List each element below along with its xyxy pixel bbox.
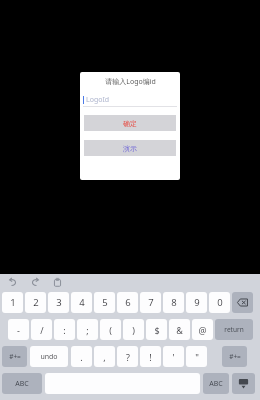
staticText: #+= <box>9 352 21 361</box>
button[interactable]: ( <box>100 319 121 340</box>
button[interactable]: ; <box>77 319 98 340</box>
button[interactable]: 9 <box>186 292 207 313</box>
staticText: ? <box>126 351 130 363</box>
staticText: ; <box>86 324 89 336</box>
staticText: , <box>103 351 106 363</box>
staticText: " <box>195 351 199 363</box>
staticText: ABC <box>15 379 29 389</box>
staticText: ' <box>172 351 175 363</box>
button[interactable]: - <box>8 319 29 340</box>
button[interactable]: ABC <box>203 373 229 394</box>
staticText: 请输入Logo编id <box>105 77 156 87</box>
staticText: 演示 <box>123 144 137 153</box>
button[interactable]: : <box>54 319 75 340</box>
staticText: & <box>176 324 183 336</box>
button[interactable]: Hide keyboard <box>232 373 255 394</box>
button[interactable]: 确定 <box>84 115 176 131</box>
button[interactable]: 演示 <box>84 140 176 156</box>
button[interactable]: ' <box>163 346 184 367</box>
staticText: LogoId <box>86 95 110 105</box>
staticText: undo <box>40 352 58 362</box>
staticText: 5 <box>102 296 108 309</box>
staticText: ( <box>109 324 112 336</box>
staticText: 2 <box>33 296 39 309</box>
button[interactable]: Redo <box>27 274 43 290</box>
staticText: 3 <box>56 296 62 309</box>
button[interactable]: 5 <box>94 292 115 313</box>
staticText: 0 <box>217 296 223 309</box>
staticText: 7 <box>148 296 154 309</box>
staticText: : <box>63 324 66 336</box>
button[interactable]: Paste <box>49 274 65 290</box>
staticText: . <box>80 351 83 363</box>
button[interactable]: @ <box>192 319 213 340</box>
staticText: return <box>224 325 244 334</box>
staticText: $ <box>154 324 160 336</box>
staticText: 9 <box>194 296 200 309</box>
button[interactable]: 3 <box>48 292 69 313</box>
button[interactable]: 7 <box>140 292 161 313</box>
button[interactable]: undo <box>30 346 68 367</box>
button[interactable]: ! <box>140 346 161 367</box>
button[interactable]: 6 <box>117 292 138 313</box>
button[interactable]: #+= <box>2 346 27 367</box>
button[interactable]: return <box>215 319 253 340</box>
button[interactable]: " <box>186 346 207 367</box>
button[interactable]: 8 <box>163 292 184 313</box>
button[interactable]: LogoId <box>83 94 177 105</box>
button[interactable]: 2 <box>25 292 46 313</box>
button[interactable]: 1 <box>2 292 23 313</box>
button[interactable]: ) <box>123 319 144 340</box>
staticText: - <box>17 324 20 336</box>
button[interactable]: ? <box>117 346 138 367</box>
staticText: @ <box>198 324 207 336</box>
staticText: 8 <box>171 296 177 309</box>
button[interactable]: $ <box>146 319 167 340</box>
button[interactable]: 0 <box>209 292 230 313</box>
button[interactable]: Undo <box>5 274 21 290</box>
button[interactable]: ABC <box>2 373 42 394</box>
button[interactable]: . <box>71 346 92 367</box>
staticText: 4 <box>79 296 85 309</box>
button[interactable]: & <box>169 319 190 340</box>
button[interactable]: Backspace <box>232 292 253 313</box>
button[interactable]: 4 <box>71 292 92 313</box>
button[interactable]: / <box>31 319 52 340</box>
staticText: ! <box>149 351 152 363</box>
button[interactable]: , <box>94 346 115 367</box>
staticText: 确定 <box>123 119 137 128</box>
staticText: #+= <box>229 352 241 361</box>
button[interactable]: #+= <box>222 346 247 367</box>
staticText: 1 <box>10 296 16 309</box>
staticText: ) <box>132 324 135 336</box>
staticText: / <box>40 324 44 336</box>
staticText: 6 <box>125 296 131 309</box>
staticText: ABC <box>209 379 223 389</box>
